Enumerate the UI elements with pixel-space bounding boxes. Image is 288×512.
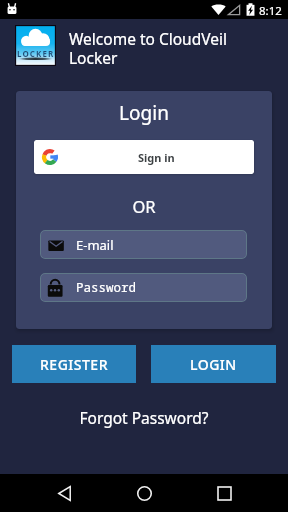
staticText: Password [76, 279, 137, 296]
button[interactable]: E-mail [40, 230, 247, 259]
button[interactable]: Home [120, 474, 168, 512]
staticText: REGISTER [40, 355, 108, 374]
button[interactable]: Forgot Password? [0, 407, 288, 428]
button[interactable]: LOGIN [151, 345, 276, 383]
button[interactable]: REGISTER [12, 345, 136, 383]
staticText: Sign in [138, 150, 175, 165]
staticText: Login [16, 100, 272, 126]
staticText: LOCKER [17, 48, 55, 59]
button[interactable]: Recents [200, 474, 248, 512]
staticText: OR [16, 195, 272, 217]
button[interactable]: Sign in [34, 140, 254, 174]
button[interactable]: Password [40, 273, 247, 302]
button[interactable]: Back [40, 474, 88, 512]
staticText: 8:12 [259, 3, 282, 19]
staticText: Welcome to CloudVeil Locker [69, 28, 227, 68]
staticText: LOGIN [190, 355, 237, 374]
staticText: E-mail [76, 236, 114, 254]
